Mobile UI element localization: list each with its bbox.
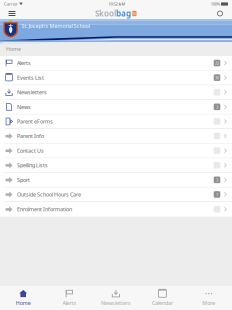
button[interactable]: More (186, 285, 232, 310)
staticText: More (202, 299, 215, 306)
staticText: St. Joseph's Memorial School (21, 22, 89, 29)
staticText: 1 (216, 192, 218, 197)
staticText: 3 (216, 177, 218, 182)
button[interactable]: Alerts (46, 285, 93, 310)
button[interactable]: Alerts (0, 56, 232, 71)
staticText: Newsletters (17, 89, 47, 96)
staticText: Carrier (4, 1, 18, 7)
button[interactable]: News (0, 100, 232, 114)
button[interactable]: Events List (0, 71, 232, 85)
button[interactable]: Outside School Hours Care (0, 187, 232, 202)
button[interactable]: Newsletters (0, 85, 232, 100)
staticText: 22 (215, 60, 219, 66)
button[interactable]: Home (0, 285, 46, 310)
staticText: 10:52 AM (108, 1, 125, 7)
staticText: Events List (17, 74, 44, 81)
staticText: Contact Us (17, 147, 44, 154)
staticText: Alerts (63, 299, 77, 306)
staticText: Enrolment Information (17, 206, 72, 213)
staticText: 30 (215, 75, 219, 80)
button[interactable]: Enrolment Information (0, 202, 232, 217)
staticText: bag (116, 8, 131, 19)
button[interactable]: Calendar (139, 285, 186, 310)
staticText: Spelling Lists (17, 162, 48, 169)
button[interactable]: Menu (2, 8, 22, 19)
staticText: News (17, 103, 31, 110)
button[interactable]: Settings (210, 8, 230, 19)
button[interactable]: Parent Info (0, 129, 232, 144)
staticText: Calendar (152, 299, 173, 306)
staticText: 100% (211, 1, 220, 7)
staticText: 3 (216, 104, 218, 109)
staticText: Home (16, 299, 31, 306)
button[interactable]: Spelling Lists (0, 158, 232, 173)
button[interactable]: Contact Us (0, 144, 232, 158)
staticText: Sport (17, 176, 30, 183)
staticText: Alerts (17, 59, 31, 67)
staticText: Parent eForms (17, 118, 53, 125)
staticText: Newsletters (101, 299, 131, 306)
button[interactable]: Newsletters (93, 285, 139, 310)
staticText: Parent Info (17, 132, 44, 140)
button[interactable]: Parent eForms (0, 114, 232, 129)
staticText: Home (6, 45, 21, 53)
staticText: Outside School Hours Care (17, 191, 81, 198)
staticText: Skool (95, 8, 116, 19)
button[interactable]: Sport (0, 173, 232, 187)
